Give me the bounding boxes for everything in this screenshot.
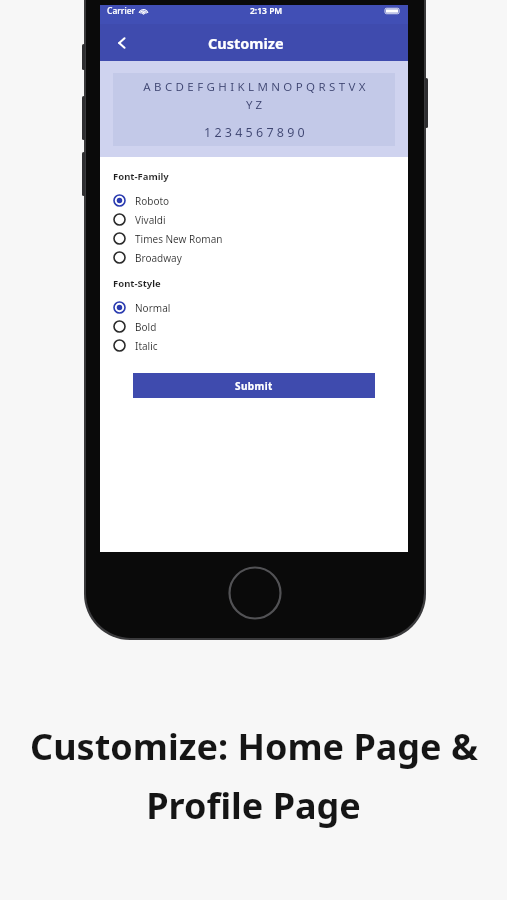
button[interactable]: Submit xyxy=(133,373,375,398)
button[interactable]: Bold xyxy=(113,317,408,336)
staticText: Broadway xyxy=(135,251,182,265)
button[interactable]: Normal xyxy=(113,298,408,317)
staticText: Italic xyxy=(135,339,158,353)
button[interactable]: Roboto xyxy=(113,191,408,210)
staticText: Roboto xyxy=(135,194,170,208)
staticText: Carrier xyxy=(107,5,136,17)
staticText: Vivaldi xyxy=(135,213,166,227)
staticText: A B C D E F G H I K L M N O P Q R S T V … xyxy=(143,79,366,95)
staticText: Times New Roman xyxy=(135,232,223,246)
staticText: Customize: Home Page & xyxy=(30,722,478,771)
staticText: 2:13 PM xyxy=(250,5,283,17)
button[interactable]: Vivaldi xyxy=(113,210,408,229)
button[interactable]: Broadway xyxy=(113,248,408,267)
staticText: Font-Family xyxy=(113,170,169,183)
staticText: Submit xyxy=(235,379,273,393)
staticText: 1 2 3 4 5 6 7 8 9 0 xyxy=(204,124,305,141)
button[interactable]: Times New Roman xyxy=(113,229,408,248)
button[interactable]: Italic xyxy=(113,336,408,355)
staticText: Profile Page xyxy=(146,781,361,830)
staticText: Bold xyxy=(135,320,157,334)
staticText: Font-Style xyxy=(113,277,161,290)
staticText: Customize xyxy=(208,33,284,53)
button[interactable]: Back xyxy=(108,29,136,57)
staticText: Y Z xyxy=(246,97,263,113)
staticText: Normal xyxy=(135,301,171,315)
